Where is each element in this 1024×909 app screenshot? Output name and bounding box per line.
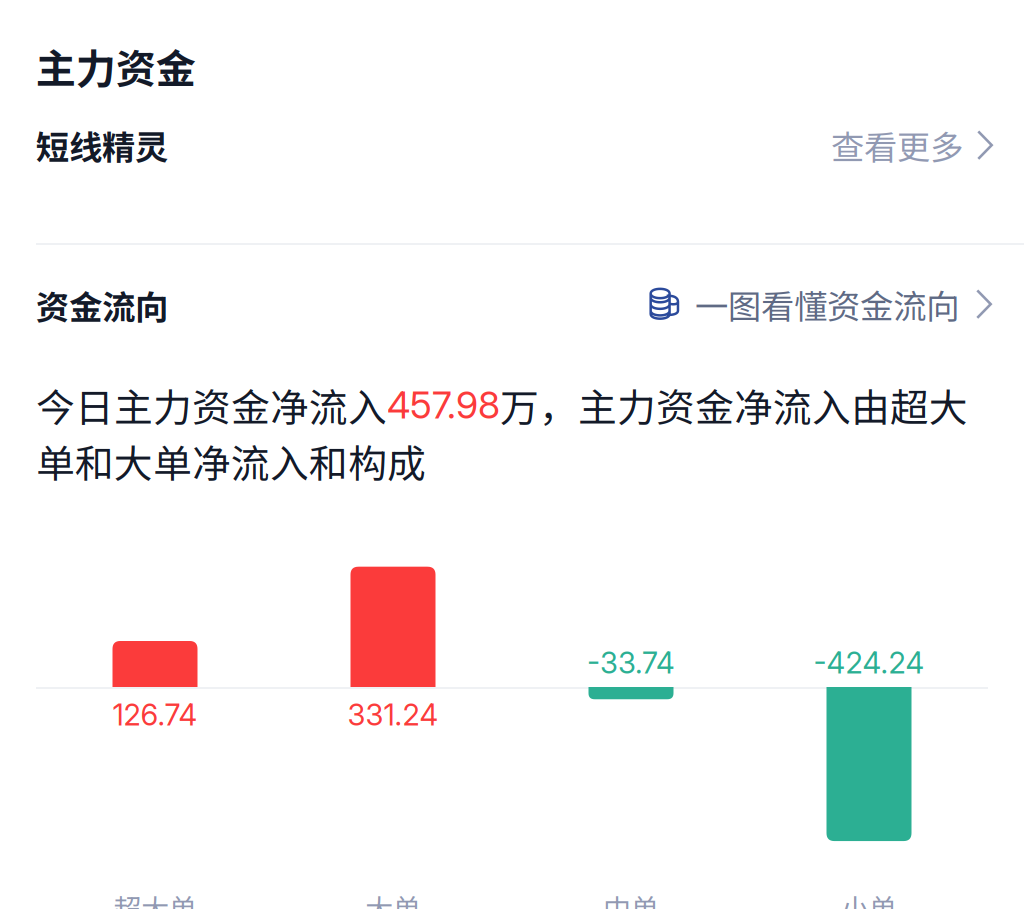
staticText: 大单 [365,887,421,909]
staticText: 今日主力资金净流入 [36,377,387,433]
staticText: -33.74 [587,645,675,680]
button[interactable]: 短线精灵 [26,111,178,179]
staticText: 短线精灵 [36,121,168,169]
staticText: 单和大单净流入和构成 [36,433,426,489]
staticText: 小单 [841,887,897,909]
staticText: 331.24 [347,697,438,732]
button[interactable]: 查看更多 [821,111,1003,179]
staticText: 查看更多 [831,121,963,169]
staticText: 主力资金 [36,37,196,95]
staticText: 资金流向 [36,281,168,329]
staticText: 万，主力资金净流入由超大 [500,377,968,433]
staticText: 一图看懂资金流向 [695,280,959,328]
staticText: 超大单 [113,887,197,909]
staticText: 457.98 [387,382,500,428]
staticText: 中单 [603,887,659,909]
button[interactable]: 一图看懂资金流向 [647,272,1000,336]
staticText: -424.24 [813,645,924,680]
staticText: 126.74 [112,697,197,732]
